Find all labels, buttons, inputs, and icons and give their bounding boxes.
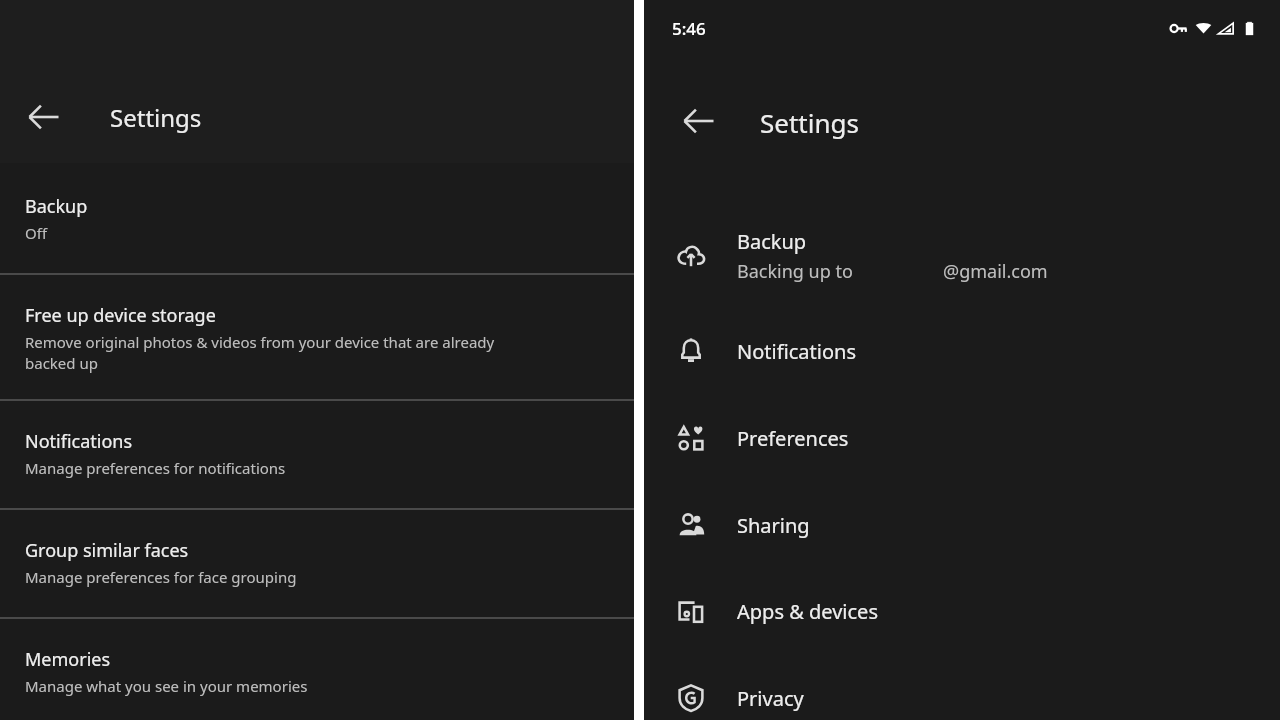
button[interactable]: Notifications bbox=[0, 413, 634, 492]
staticText: Manage what you see in your memories bbox=[25, 676, 308, 696]
button[interactable]: Notifications bbox=[644, 320, 1280, 382]
staticText: Manage preferences for notifications bbox=[25, 458, 286, 478]
button[interactable]: Preferences bbox=[644, 407, 1280, 469]
staticText: @gmail.com bbox=[943, 259, 1048, 284]
staticText: Remove original photos & videos from you… bbox=[25, 332, 495, 374]
staticText: Notifications bbox=[737, 338, 856, 365]
button[interactable]: Backup bbox=[0, 178, 634, 257]
button[interactable]: Apps & devices bbox=[644, 580, 1280, 642]
staticText: Sharing bbox=[737, 512, 810, 539]
button[interactable]: Sharing bbox=[644, 494, 1280, 556]
staticText: Settings bbox=[110, 101, 202, 134]
staticText: Apps & devices bbox=[737, 598, 878, 625]
button[interactable]: Backup bbox=[644, 218, 1280, 294]
staticText: Manage preferences for face grouping bbox=[25, 567, 297, 587]
staticText: Free up device storage bbox=[25, 303, 216, 328]
button[interactable]: Back bbox=[677, 99, 721, 143]
staticText: Off bbox=[25, 223, 48, 243]
button[interactable]: Back bbox=[22, 95, 66, 139]
button[interactable]: Free up device storage bbox=[0, 287, 634, 388]
button[interactable]: Group similar faces bbox=[0, 522, 634, 601]
staticText: Backup bbox=[25, 194, 88, 219]
staticText: Privacy bbox=[737, 685, 804, 712]
staticText: Settings bbox=[760, 105, 859, 140]
button[interactable]: Memories bbox=[0, 631, 634, 710]
staticText: Backup bbox=[737, 228, 807, 255]
staticText: Backing up to bbox=[737, 259, 853, 284]
staticText: Preferences bbox=[737, 425, 849, 452]
staticText: 5:46 bbox=[672, 17, 706, 40]
staticText: Memories bbox=[25, 647, 111, 672]
staticText: Group similar faces bbox=[25, 538, 189, 563]
button[interactable]: Privacy bbox=[644, 667, 1280, 720]
staticText: Notifications bbox=[25, 429, 133, 454]
